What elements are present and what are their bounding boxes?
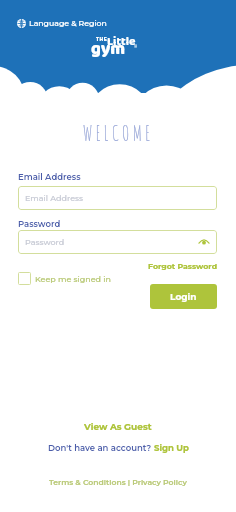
staticText: gym <box>91 35 126 63</box>
button[interactable]: Terms & Conditions | Privacy Policy <box>49 478 187 487</box>
staticText: Password <box>25 237 65 247</box>
button[interactable]: Login <box>150 284 217 309</box>
button[interactable]: Language and Region <box>17 18 107 28</box>
staticText: Keep me signed in <box>35 274 111 284</box>
button[interactable]: Email Address <box>18 186 217 210</box>
button[interactable]: Keep me signed in <box>18 272 111 285</box>
other: Language and Region <box>17 19 26 28</box>
staticText: ® <box>134 44 138 49</box>
button[interactable]: Don't have an account? <box>48 443 189 453</box>
staticText: Don't have an account? <box>48 443 154 453</box>
staticText: Little <box>107 32 136 51</box>
staticText: Language & Region <box>29 18 107 28</box>
staticText: Sign Up <box>154 443 189 453</box>
staticText: Login <box>170 291 197 302</box>
button[interactable]: Password <box>18 230 217 254</box>
button[interactable]: View As Guest <box>84 421 152 432</box>
button[interactable]: Show password <box>198 236 210 248</box>
staticText: WELCOME <box>0 120 236 146</box>
staticText: THE <box>96 37 108 42</box>
staticText: Email Address <box>25 193 84 203</box>
staticText: Email Address <box>18 172 81 182</box>
button[interactable]: Forgot Password <box>133 258 218 274</box>
staticText: Password <box>18 219 61 229</box>
staticText: Forgot Password <box>148 261 218 271</box>
